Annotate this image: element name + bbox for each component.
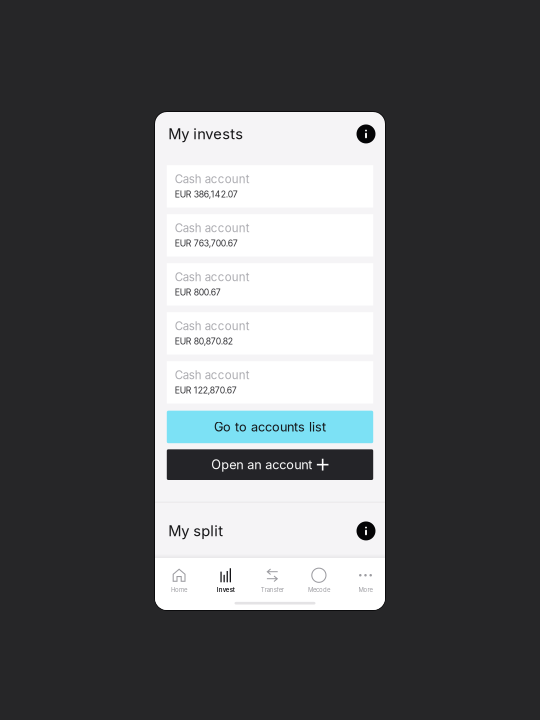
- staticText: EUR 122,870.67: [175, 385, 237, 396]
- button[interactable]: Cash account: [167, 312, 373, 354]
- staticText: Mecode: [308, 586, 330, 593]
- staticText: Cash account: [175, 319, 250, 333]
- button[interactable]: More: [342, 567, 389, 594]
- staticText: My split: [168, 522, 223, 540]
- staticText: Open an account: [211, 457, 312, 472]
- staticText: Invest: [217, 586, 235, 593]
- staticText: Cash account: [175, 172, 250, 186]
- staticText: Cash account: [175, 221, 250, 235]
- button[interactable]: Cash account: [167, 263, 373, 305]
- staticText: EUR 80,870.82: [175, 336, 233, 347]
- staticText: More: [358, 586, 372, 593]
- button[interactable]: Home: [156, 567, 202, 594]
- button[interactable]: Go to accounts list: [167, 411, 373, 443]
- staticText: EUR 800.67: [175, 287, 221, 298]
- button[interactable]: Open an account: [167, 449, 373, 480]
- button[interactable]: Information: [355, 520, 377, 542]
- button[interactable]: Mecode: [296, 567, 342, 594]
- staticText: Transfer: [261, 586, 284, 593]
- staticText: Cash account: [175, 368, 250, 382]
- staticText: My invests: [168, 125, 243, 143]
- button[interactable]: Information: [355, 123, 377, 145]
- staticText: EUR 386,142.07: [175, 189, 238, 200]
- button[interactable]: Cash account: [167, 165, 373, 207]
- staticText: Go to accounts list: [214, 419, 326, 435]
- staticText: EUR 763,700.67: [175, 238, 238, 249]
- button[interactable]: Transfer: [249, 567, 296, 594]
- staticText: Cash account: [175, 270, 250, 284]
- button[interactable]: Cash account: [167, 361, 373, 403]
- staticText: Home: [171, 586, 187, 593]
- button[interactable]: Invest: [202, 567, 249, 594]
- button[interactable]: Cash account: [167, 214, 373, 256]
